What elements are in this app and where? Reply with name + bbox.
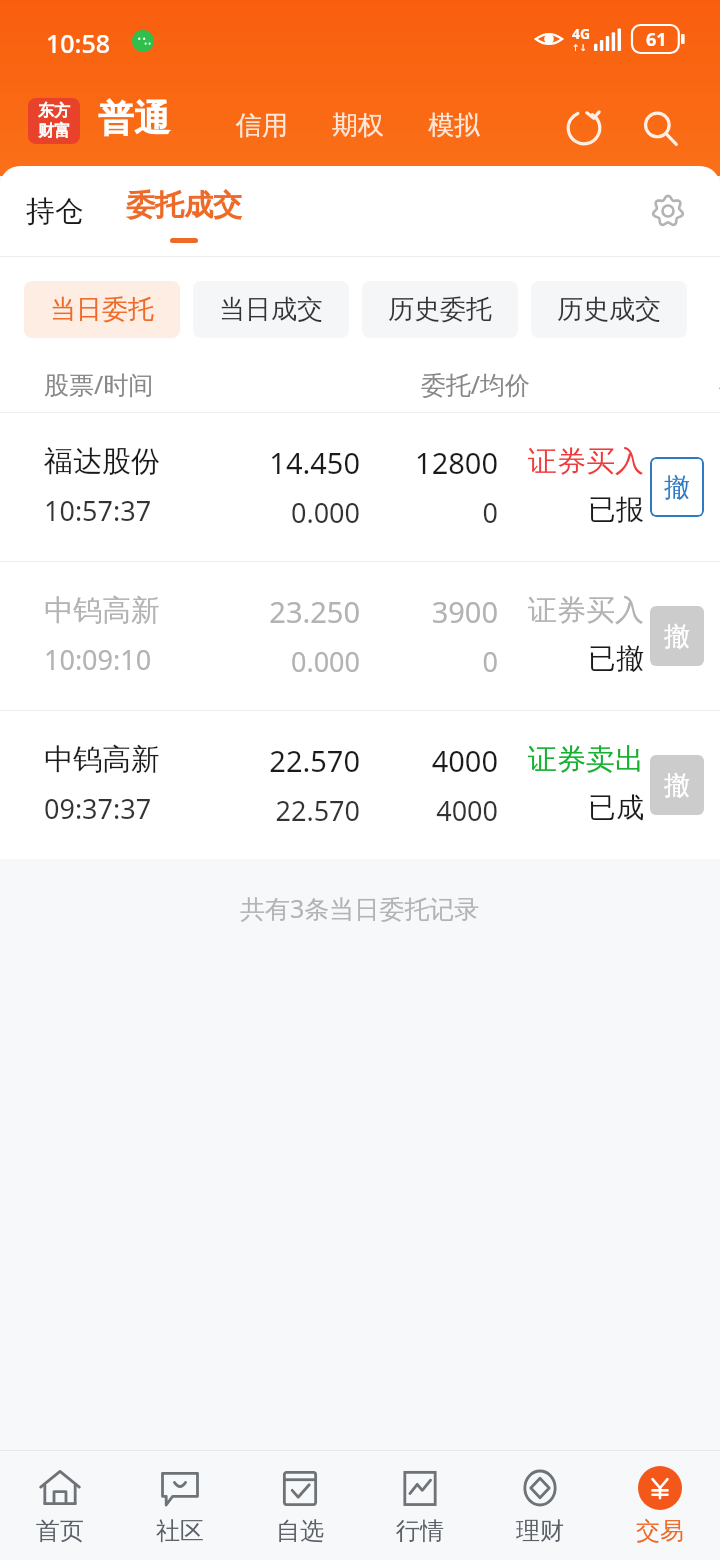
staticText: 普通 <box>98 96 170 141</box>
staticText: 东方 <box>38 101 70 121</box>
staticText: 22.570 <box>200 741 360 780</box>
staticText: 社区 <box>156 1516 204 1546</box>
staticText: 行情 <box>396 1516 444 1546</box>
button[interactable]: 当日委托 <box>24 281 180 338</box>
button[interactable]: 普通 <box>96 94 172 143</box>
staticText: 理财 <box>516 1516 564 1546</box>
button[interactable]: Refresh <box>556 100 612 156</box>
button[interactable]: 撤 <box>650 457 704 517</box>
staticText: 委托/均价 <box>370 367 530 401</box>
staticText: 当日成交 <box>219 293 323 326</box>
staticText: 交易 <box>636 1516 684 1546</box>
button[interactable]: 中钨高新 <box>0 562 720 710</box>
staticText: 证券买入 <box>480 592 644 629</box>
staticText: 股票/时间 <box>44 367 214 401</box>
staticText: 首页 <box>36 1516 84 1546</box>
staticText: 委托成交 <box>126 187 242 224</box>
staticText: 23.250 <box>200 592 360 631</box>
staticText: 信用 <box>236 109 288 142</box>
staticText: 财富 <box>38 121 70 141</box>
staticText: 共有3条当日委托记录 <box>240 891 480 925</box>
staticText: 10:09:10 <box>44 641 152 678</box>
staticText: 中钨高新 <box>44 592 160 629</box>
staticText: 已成 <box>480 790 644 825</box>
staticText: 撤 <box>664 471 690 504</box>
button[interactable]: 历史成交 <box>531 281 687 338</box>
button[interactable]: 首页 <box>0 1457 120 1554</box>
staticText: 10:57:37 <box>44 492 152 529</box>
staticText: 证券买入 <box>480 443 644 480</box>
staticText: 09:37:37 <box>44 790 152 827</box>
staticText: 0.000 <box>200 643 360 680</box>
button[interactable]: 期权 <box>328 105 388 146</box>
staticText: 已报 <box>480 492 644 527</box>
staticText: 持仓 <box>26 193 84 230</box>
button[interactable]: 行情 <box>360 1457 480 1554</box>
button[interactable]: 撤 <box>650 606 704 666</box>
staticText: 10:58 <box>46 26 111 60</box>
staticText: 中钨高新 <box>44 741 160 778</box>
staticText: 0 <box>370 643 498 680</box>
staticText: 14.450 <box>200 443 360 482</box>
staticText: 福达股份 <box>44 443 160 480</box>
button[interactable]: 中钨高新 <box>0 711 720 859</box>
staticText: 撤 <box>664 620 690 653</box>
staticText: 61 <box>646 27 667 52</box>
staticText: 12800 <box>370 443 498 482</box>
button[interactable]: 福达股份 <box>0 413 720 561</box>
staticText: 4000 <box>370 741 498 780</box>
staticText: 自选 <box>276 1516 324 1546</box>
staticText: 0.000 <box>200 494 360 531</box>
button[interactable]: Settings <box>636 179 700 243</box>
staticText: 期权 <box>332 109 384 142</box>
staticText: 历史成交 <box>557 293 661 326</box>
button[interactable]: 社区 <box>120 1457 240 1554</box>
button[interactable]: 模拟 <box>424 105 484 146</box>
button[interactable]: 自选 <box>240 1457 360 1554</box>
button[interactable]: 委托成交 <box>124 179 244 232</box>
button[interactable]: 交易 <box>600 1457 720 1554</box>
staticText: 撤 <box>664 769 690 802</box>
staticText: 当日委托 <box>50 293 154 326</box>
staticText: 委量/成交 <box>700 367 720 401</box>
button[interactable]: 信用 <box>232 105 292 146</box>
staticText: 模拟 <box>428 109 480 142</box>
staticText: 3900 <box>370 592 498 631</box>
staticText: 证券卖出 <box>480 741 644 778</box>
staticText: 历史委托 <box>388 293 492 326</box>
staticText: 0 <box>370 494 498 531</box>
staticText: 4000 <box>370 792 498 829</box>
button[interactable]: Search <box>632 100 688 156</box>
button[interactable]: 当日成交 <box>193 281 349 338</box>
button[interactable]: 历史委托 <box>362 281 518 338</box>
staticText: 4G <box>572 24 591 43</box>
staticText: ↑↓ <box>572 43 588 53</box>
button[interactable]: 持仓 <box>24 185 86 238</box>
staticText: 已撤 <box>480 641 644 676</box>
staticText: 22.570 <box>200 792 360 829</box>
button[interactable]: 理财 <box>480 1457 600 1554</box>
button[interactable]: 撤 <box>650 755 704 815</box>
